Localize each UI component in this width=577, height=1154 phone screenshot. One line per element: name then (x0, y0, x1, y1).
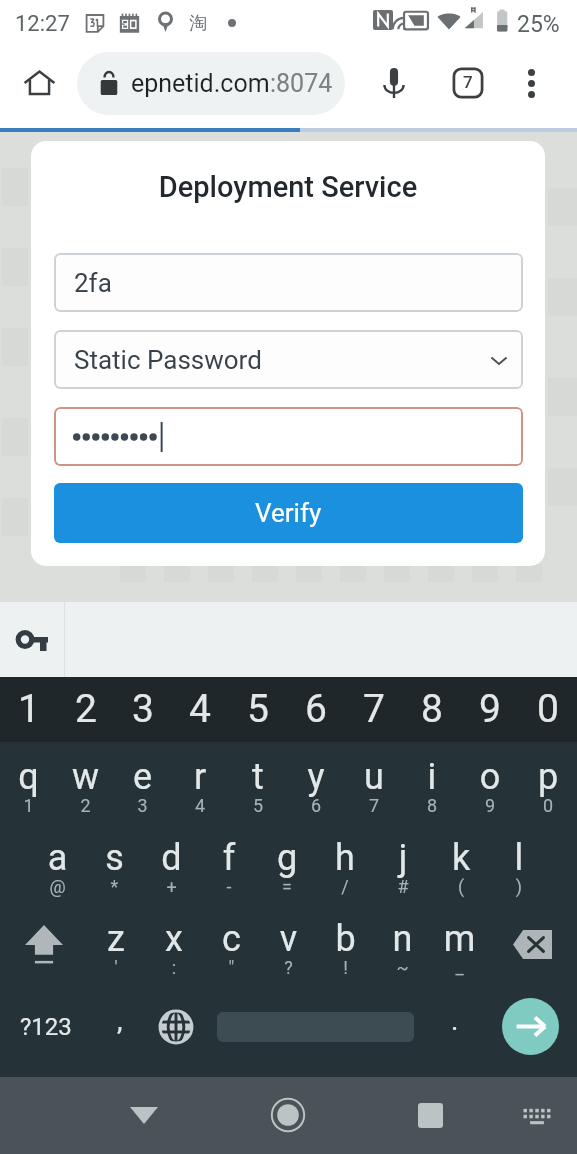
staticText: 淘 (189, 12, 207, 35)
button[interactable]: v (260, 904, 317, 985)
staticText: ! (317, 957, 374, 978)
button[interactable]: 9 (461, 677, 519, 742)
staticText: n (374, 918, 431, 960)
button[interactable]: 1 (0, 677, 57, 742)
button[interactable]: l (490, 823, 548, 904)
button[interactable]: 7 (345, 677, 403, 742)
staticText: 0 (519, 795, 577, 816)
staticText: ) (490, 876, 548, 897)
button[interactable]: 2fa (54, 253, 523, 312)
button[interactable]: Keyboard (507, 1085, 567, 1145)
button[interactable]: b (317, 904, 374, 985)
staticText: _ (431, 957, 488, 978)
button[interactable]: p (519, 742, 577, 823)
button[interactable]: t (229, 742, 287, 823)
staticText: r (171, 756, 229, 798)
staticText: / (316, 876, 374, 897)
staticText: , (117, 1004, 123, 1037)
button[interactable]: Back (114, 1085, 174, 1145)
button[interactable]: Static Password (54, 330, 523, 389)
staticText: # (374, 876, 432, 897)
button[interactable]: e (114, 742, 171, 823)
button[interactable]: j (374, 823, 432, 904)
button[interactable]: a (29, 823, 86, 904)
button[interactable]: Home (258, 1085, 318, 1145)
button[interactable]: 3 (114, 677, 171, 742)
button[interactable]: 6 (287, 677, 345, 742)
button[interactable]: u (345, 742, 403, 823)
staticText: 9 (479, 686, 501, 732)
button[interactable]: r (171, 742, 229, 823)
button[interactable]: Change language (148, 985, 204, 1068)
button[interactable]: Space (204, 985, 427, 1068)
staticText: p (519, 756, 577, 798)
button[interactable]: Recents (400, 1085, 460, 1145)
staticText: 1 (0, 795, 57, 816)
button[interactable]: Voice search (372, 61, 416, 105)
button[interactable]: m (431, 904, 488, 985)
staticText: q (0, 756, 57, 798)
button[interactable]: epnetid.com (77, 52, 345, 115)
button[interactable]: Delete (488, 904, 577, 985)
staticText: k (432, 837, 490, 879)
staticText: " (203, 957, 260, 978)
staticText: Verify (255, 498, 322, 528)
staticText: v (260, 918, 317, 960)
button[interactable] (54, 407, 523, 466)
staticText: 9 (461, 795, 519, 816)
staticText: Deployment Service (31, 170, 545, 204)
staticText: ~ (374, 957, 431, 978)
staticText: c (203, 918, 260, 960)
button[interactable]: g (258, 823, 316, 904)
staticText: 8 (403, 795, 461, 816)
staticText: . (451, 1004, 459, 1037)
button[interactable]: Verify (54, 483, 523, 543)
button[interactable]: Shift (0, 904, 87, 985)
button[interactable]: . (427, 985, 483, 1068)
button[interactable]: c (203, 904, 260, 985)
button[interactable]: 5 (229, 677, 287, 742)
staticText: 6 (287, 795, 345, 816)
staticText: 3 (114, 795, 171, 816)
button[interactable]: w (57, 742, 114, 823)
button[interactable]: d (143, 823, 200, 904)
staticText: f (200, 837, 258, 879)
button[interactable]: ?123 (0, 985, 92, 1068)
staticText: 2fa (74, 268, 112, 298)
button[interactable]: 8 (403, 677, 461, 742)
staticText: Static Password (74, 345, 262, 375)
button[interactable]: k (432, 823, 490, 904)
button[interactable]: Tabs (446, 61, 490, 105)
staticText: :8074 (270, 69, 333, 98)
button[interactable]: n (374, 904, 431, 985)
staticText: epnetid.com (131, 69, 270, 98)
button[interactable]: More options (509, 61, 553, 105)
staticText: 8 (421, 686, 443, 732)
button[interactable]: f (200, 823, 258, 904)
button[interactable]: z (87, 904, 145, 985)
button[interactable]: 4 (171, 677, 229, 742)
button[interactable]: , (92, 985, 148, 1068)
button[interactable]: q (0, 742, 57, 823)
staticText: u (345, 756, 403, 798)
staticText: 12:27 (15, 11, 70, 37)
button[interactable]: 2 (57, 677, 114, 742)
staticText: 4 (189, 686, 211, 732)
button[interactable]: x (145, 904, 203, 985)
button[interactable]: Home (17, 61, 61, 105)
button[interactable]: i (403, 742, 461, 823)
staticText: ( (432, 876, 490, 897)
staticText: 6 (305, 686, 327, 732)
staticText: 4 (171, 795, 229, 816)
staticText: a (29, 837, 86, 879)
staticText: 5 (229, 795, 287, 816)
staticText: - (200, 876, 258, 897)
button[interactable]: Enter (483, 985, 577, 1068)
button[interactable]: s (86, 823, 143, 904)
button[interactable]: o (461, 742, 519, 823)
button[interactable]: y (287, 742, 345, 823)
staticText: o (461, 756, 519, 798)
staticText: ?123 (20, 1013, 72, 1041)
button[interactable]: h (316, 823, 374, 904)
button[interactable]: 0 (519, 677, 577, 742)
